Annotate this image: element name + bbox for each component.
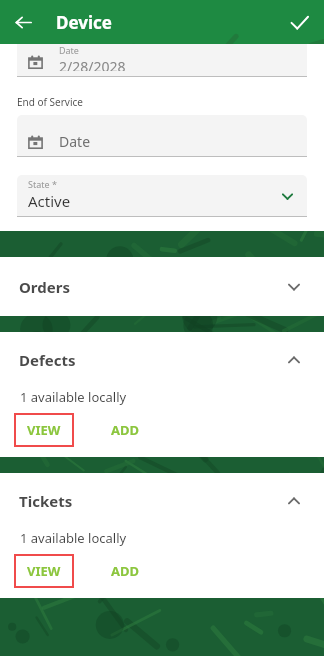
button[interactable]: Orders [0,257,324,316]
staticText: VIEW [27,562,61,580]
button[interactable]: Date [17,44,307,77]
staticText: VIEW [27,421,61,439]
staticText: ADD [111,421,140,439]
other: Expand State [277,186,297,206]
staticText: Active [28,191,71,211]
staticText: Defects [19,350,283,370]
staticText: Date [59,132,91,151]
staticText: 1 available locally [20,529,127,547]
staticText: 1 available locally [20,388,127,406]
staticText: End of Service [17,95,83,109]
button[interactable]: ADD [103,554,148,588]
button[interactable]: Tickets [0,473,324,529]
staticText: Orders [19,277,283,297]
button[interactable]: VIEW [14,554,74,588]
button[interactable]: Date [17,115,307,157]
staticText: Tickets [19,491,283,511]
button[interactable]: ADD [103,413,148,447]
button[interactable]: VIEW [14,413,74,447]
button[interactable]: Defects [0,332,324,388]
staticText: Device [56,11,112,34]
staticText: 2/28/2028 [59,57,126,71]
staticText: State * [28,178,57,190]
staticText: ADD [111,562,140,580]
button[interactable]: State * [17,175,307,217]
button[interactable]: Save [282,5,316,39]
staticText: Date [59,44,79,56]
button[interactable]: Back [6,5,40,39]
